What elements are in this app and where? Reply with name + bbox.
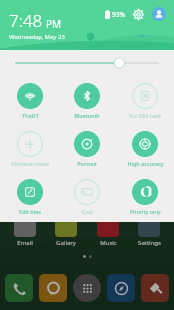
button[interactable]: Gallery: [47, 215, 85, 247]
staticText: Gallery: [56, 239, 76, 247]
button[interactable]: Music: [89, 215, 127, 247]
staticText: Airplane mode: [11, 160, 49, 167]
button[interactable]: Settings: [132, 8, 145, 21]
button[interactable]: Settings: [130, 215, 168, 247]
button[interactable]: High accuracy: [117, 127, 173, 173]
staticText: 93%: [112, 10, 125, 19]
button[interactable]: Edit tiles: [2, 175, 58, 221]
button[interactable]: Bluetooth: [59, 79, 115, 125]
button[interactable]: 7:48: [9, 9, 65, 41]
button[interactable]: No SIM card: [117, 79, 173, 125]
button[interactable]: Cast: [59, 175, 115, 221]
button[interactable]: Brightness: [0, 53, 174, 73]
staticText: 7:48: [9, 9, 43, 32]
button[interactable]: App: [73, 274, 101, 302]
staticText: Edit tiles: [19, 208, 41, 215]
staticText: Email: [17, 239, 33, 247]
button[interactable]: App: [5, 274, 33, 302]
staticText: PM: [46, 17, 62, 31]
staticText: Wednesday, May 25: [9, 33, 65, 41]
button[interactable]: Portrait: [59, 127, 115, 173]
staticText: Bluetooth: [74, 112, 100, 119]
button[interactable]: App: [141, 274, 169, 302]
staticText: TheDT: [22, 112, 39, 119]
staticText: Cast: [81, 208, 93, 215]
button[interactable]: TheDT: [2, 79, 58, 125]
button[interactable]: App: [39, 274, 67, 302]
button[interactable]: Airplane mode: [2, 127, 58, 173]
button[interactable]: User profile: [152, 7, 166, 21]
staticText: High accuracy: [127, 160, 164, 167]
staticText: No SIM card: [129, 112, 161, 119]
button[interactable]: App: [107, 274, 135, 302]
button[interactable]: Email: [6, 215, 44, 247]
button[interactable]: Priority only: [117, 175, 173, 221]
staticText: Settings: [138, 239, 161, 247]
staticText: Priority only: [129, 208, 161, 215]
staticText: Portrait: [77, 160, 97, 167]
staticText: Music: [100, 239, 117, 247]
